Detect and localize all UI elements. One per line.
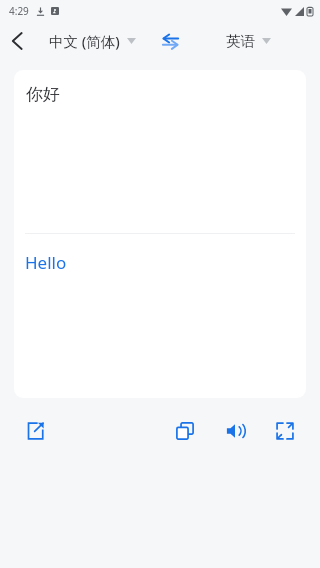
button[interactable]: Listen	[218, 414, 252, 448]
staticText: 英语	[226, 32, 255, 50]
button[interactable]: 中文 (简体)	[34, 31, 150, 51]
staticText: 中文 (简体)	[49, 31, 120, 51]
staticText: 4:29	[9, 4, 29, 18]
button[interactable]: Share	[18, 414, 52, 448]
button[interactable]: Swap languages	[150, 22, 190, 60]
staticText: Hello	[25, 251, 67, 274]
staticText: 你好	[26, 84, 60, 105]
button[interactable]: 英语	[190, 32, 306, 50]
button[interactable]: Back	[0, 24, 34, 58]
button[interactable]: Copy	[168, 414, 202, 448]
button[interactable]: 你好	[14, 70, 306, 398]
button[interactable]: Fullscreen	[268, 414, 302, 448]
